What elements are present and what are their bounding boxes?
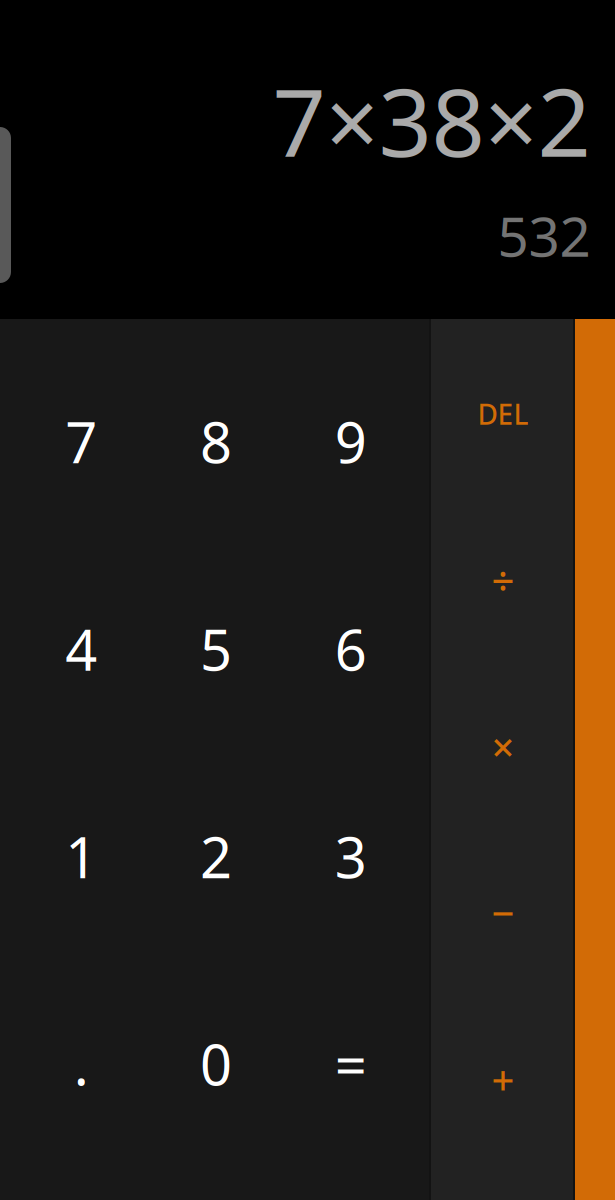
staticText: 5 xyxy=(200,612,232,686)
button[interactable]: 9 xyxy=(283,338,418,545)
button[interactable]: 1 xyxy=(14,753,149,960)
staticText: ÷ xyxy=(491,554,514,607)
button[interactable]: 3 xyxy=(283,753,418,960)
staticText: . xyxy=(74,1027,89,1101)
staticText: 3 xyxy=(335,819,367,894)
staticText: − xyxy=(491,886,514,939)
staticText: 0 xyxy=(200,1027,232,1101)
button[interactable]: = xyxy=(283,960,418,1168)
staticText: 7 xyxy=(65,404,97,479)
button[interactable]: 0 xyxy=(149,960,283,1168)
button[interactable]: Show history xyxy=(0,127,11,283)
staticText: 6 xyxy=(335,612,367,686)
button[interactable]: Subtract xyxy=(431,830,575,996)
staticText: 8 xyxy=(200,404,232,479)
button[interactable]: . xyxy=(14,960,149,1168)
button[interactable]: 2 xyxy=(149,753,283,960)
staticText: × xyxy=(491,720,514,773)
staticText: DEL xyxy=(477,395,528,432)
staticText: 2 xyxy=(200,819,232,894)
button[interactable]: 8 xyxy=(149,338,283,545)
staticText: + xyxy=(491,1052,514,1106)
button[interactable]: Divide xyxy=(431,497,575,663)
button[interactable]: Delete xyxy=(431,331,575,497)
button[interactable]: 4 xyxy=(14,545,149,753)
button[interactable]: 6 xyxy=(283,545,418,753)
button[interactable]: 7 xyxy=(14,338,149,545)
staticText: 9 xyxy=(335,404,367,479)
staticText: 532 xyxy=(497,199,590,272)
staticText: 4 xyxy=(65,612,97,686)
staticText: 1 xyxy=(65,819,97,894)
button[interactable]: Multiply xyxy=(431,663,575,830)
button[interactable]: 5 xyxy=(149,545,283,753)
button[interactable]: Add xyxy=(431,996,575,1162)
staticText: 7×38×2 xyxy=(272,58,590,182)
staticText: = xyxy=(335,1027,367,1101)
